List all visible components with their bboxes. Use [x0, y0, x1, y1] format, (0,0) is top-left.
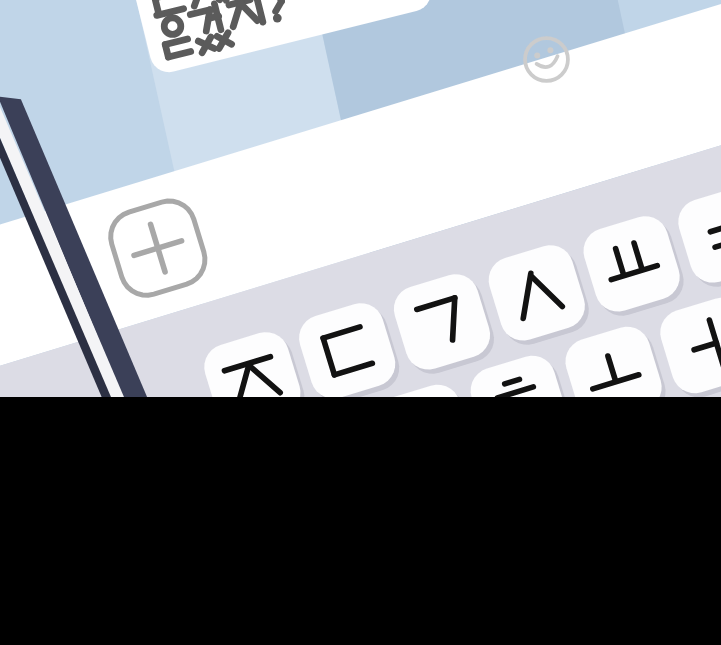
button[interactable]: Add attachment — [124, 299, 170, 345]
button[interactable]: Message bubble — [150, 0, 430, 100]
